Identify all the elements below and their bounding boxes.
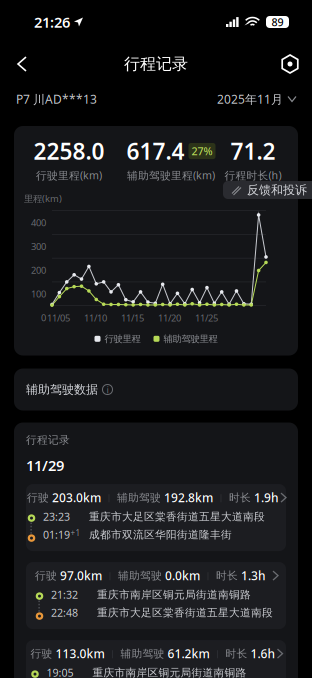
staticText: 200 [31,264,46,276]
button[interactable]: 反馈和投诉 [223,181,312,199]
staticText: 11/05 [47,312,70,324]
staticText: 0 [41,311,46,324]
staticText: 01:19 [43,527,70,542]
staticText: 行驶 [30,647,55,660]
staticText: 11/25 [195,312,218,324]
staticText: 97.0km [60,568,102,583]
staticText: 11/15 [121,312,144,324]
button[interactable]: 返回 [0,44,44,84]
staticText: 成都市双流区华阳街道隆丰街 [89,528,232,541]
staticText: 300 [31,240,46,252]
staticText: 重庆市大足区棠香街道五星大道南段 [97,606,273,619]
staticText: 27% [191,144,212,158]
button[interactable]: 行驶 [26,484,286,551]
staticText: 辅助驾驶 [118,569,165,582]
staticText: 时长 [229,491,254,504]
staticText: 192.8km [164,490,213,505]
staticText: 11/20 [158,312,181,324]
staticText: 行程时长(h) [224,168,281,182]
staticText: 11/29 [26,456,64,475]
button[interactable]: 2025年11月 [217,91,312,107]
button[interactable]: 行驶 [26,640,286,678]
staticText: 里程(km) [24,192,62,205]
staticText: 11/10 [84,312,107,324]
staticText: ｜ [209,649,225,658]
staticText: 203.0km [52,490,101,505]
staticText: 71.2 [230,136,275,166]
staticText: 61.2km [167,646,209,661]
staticText: 1.9h [254,490,279,505]
staticText: 重庆市南岸区铜元局街道南铜路 [97,588,251,601]
staticText: 21:26 [34,12,70,32]
staticText: 21:32 [51,587,78,602]
button[interactable]: 行驶 [26,562,286,629]
staticText: 400 [31,216,46,229]
staticText: 辅助驾驶里程(km) [127,168,215,182]
staticText: 0.0km [165,568,200,583]
staticText: 辅助驾驶 [120,647,167,660]
staticText: P7 川AD***13 [16,91,97,107]
staticText: 113.0km [55,646,104,661]
staticText: 行驶 [27,491,52,504]
staticText: 行驶里程(km) [36,168,102,182]
staticText: 617.4 [126,136,184,166]
staticText: 100 [31,288,46,300]
staticText: 22:48 [51,605,78,620]
staticText: 1.6h [250,646,275,661]
staticText: 2025年11月 [217,91,283,107]
staticText: 行程记录 [124,54,188,74]
staticText: 23:23 [43,509,70,524]
staticText: 重庆市南岸区铜元局街道南铜路 [92,666,246,678]
staticText: +1 [70,527,80,538]
button[interactable]: P7 川AD***13 [0,91,97,107]
staticText: 89 [271,15,283,29]
staticText: 时长 [225,647,250,660]
staticText: 反馈和投诉 [247,183,307,197]
staticText: 行驶 [35,569,60,582]
button[interactable]: 辅助驾驶数据 [14,368,298,410]
staticText: ｜ [104,649,120,658]
staticText: i [106,383,108,396]
staticText: 辅助驾驶里程 [163,333,217,345]
button[interactable]: 设置 [268,44,312,84]
staticText: 辅助驾驶 [117,491,164,504]
staticText: 19:05 [46,665,73,678]
staticText: 行驶里程 [104,333,140,345]
staticText: 辅助驾驶数据 [26,382,98,397]
staticText: 重庆市大足区棠香街道五星大道南段 [89,510,265,523]
staticText: 1.3h [241,568,266,583]
staticText: 行程记录 [26,433,70,447]
staticText: 时长 [216,569,241,582]
staticText: 2258.0 [33,136,104,166]
